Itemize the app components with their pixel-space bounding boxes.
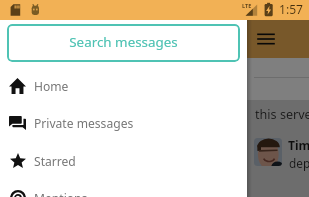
button[interactable]: Private messages <box>0 104 247 141</box>
staticText: Private messages <box>34 115 134 131</box>
button[interactable]: Mentions <box>0 179 247 197</box>
staticText: 1:57 <box>279 1 303 17</box>
staticText: LTE <box>242 2 252 10</box>
staticText: Mentions <box>34 190 88 197</box>
staticText: dep <box>289 155 309 171</box>
button[interactable]: Open navigation drawer <box>253 26 279 52</box>
button[interactable]: Home <box>0 67 247 104</box>
staticText: this server <box>255 106 309 123</box>
staticText: Starred <box>34 153 76 169</box>
button[interactable]: Starred <box>0 142 247 179</box>
staticText: Tim <box>288 137 309 153</box>
button[interactable]: Search messages <box>7 24 240 62</box>
staticText: Search messages <box>69 33 178 51</box>
staticText: Home <box>34 78 69 94</box>
